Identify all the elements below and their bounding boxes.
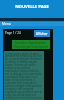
staticText: Telecharger maintenant [14,45,48,49]
staticText: Installer l'application [15,41,47,45]
staticText: Page 1 / 24 [5,31,21,35]
staticText: Menu [2,22,11,26]
button[interactable]: Afficher [34,30,50,37]
button[interactable]: Installer l'application [12,40,50,49]
staticText: NOUVELLE PAGE [15,4,49,10]
staticText: Afficher [36,32,48,36]
staticText: Lorem ipsum dolor sit amet consectetur a… [5,52,43,99]
